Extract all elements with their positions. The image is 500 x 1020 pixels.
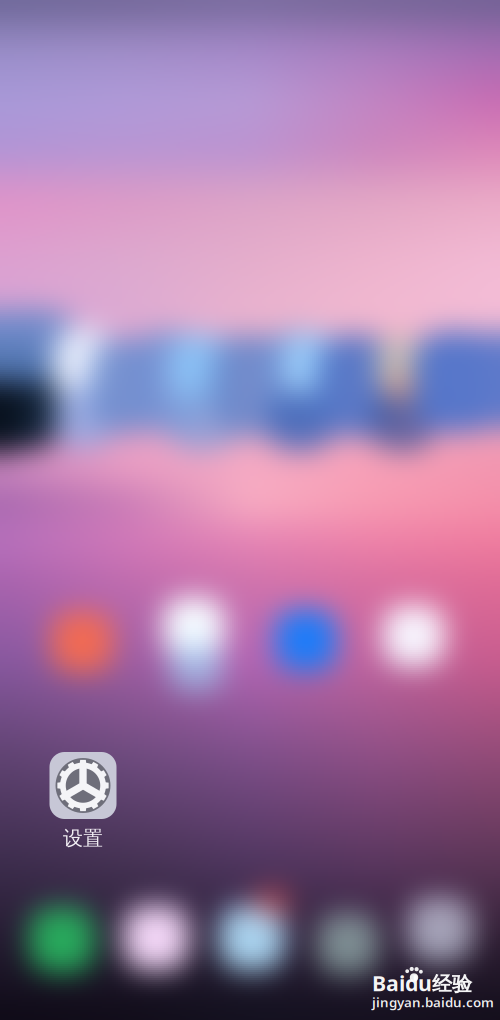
staticText: jingyan.baidu.com [372,993,494,1011]
staticText: 设置 [63,826,103,851]
button[interactable]: 设置 [49,752,116,819]
staticText: Baidu [372,969,432,997]
staticText: 经验 [432,972,472,996]
